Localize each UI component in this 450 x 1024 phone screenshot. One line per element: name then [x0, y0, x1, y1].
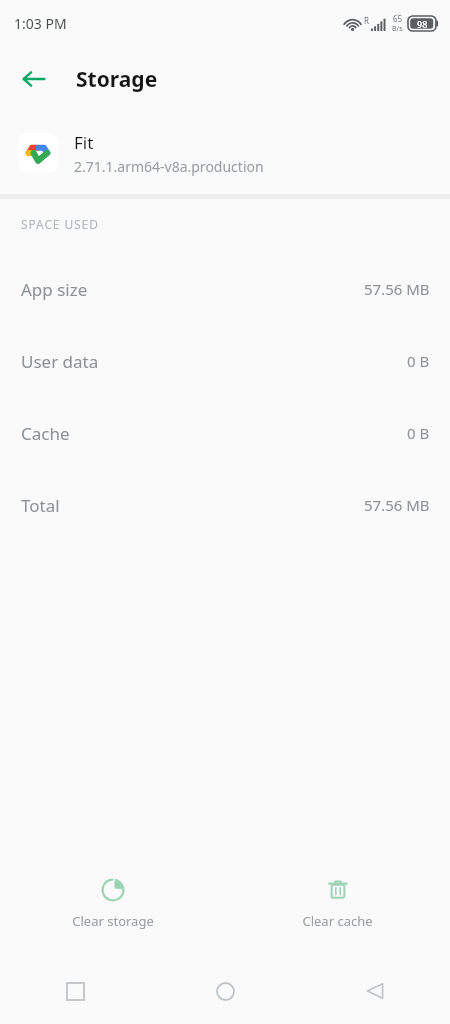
- button[interactable]: App size: [0, 253, 450, 325]
- button[interactable]: Recents: [0, 964, 150, 1018]
- staticText: 98: [417, 18, 428, 30]
- staticText: Fit: [74, 131, 94, 154]
- staticText: Clear cache: [302, 912, 373, 930]
- staticText: 0 B: [407, 423, 430, 443]
- staticText: App size: [21, 278, 88, 301]
- staticText: 57.56 MB: [364, 495, 430, 515]
- staticText: Clear storage: [72, 912, 154, 930]
- button[interactable]: Home: [150, 964, 300, 1018]
- staticText: 0 B: [407, 351, 430, 371]
- button[interactable]: Back: [10, 55, 58, 103]
- button[interactable]: Clear storage: [0, 866, 225, 940]
- button[interactable]: Total: [0, 469, 450, 541]
- button[interactable]: Fit: [0, 112, 450, 194]
- staticText: 1:03 PM: [14, 14, 67, 33]
- staticText: 65: [393, 13, 403, 24]
- staticText: Total: [21, 494, 60, 517]
- staticText: 2.71.1.arm64-v8a.production: [74, 157, 264, 176]
- staticText: Storage: [76, 65, 158, 94]
- button[interactable]: Back: [300, 964, 450, 1018]
- staticText: R: [364, 15, 369, 26]
- staticText: B/s: [392, 24, 403, 34]
- staticText: SPACE USED: [21, 216, 99, 232]
- staticText: User data: [21, 350, 99, 373]
- button[interactable]: Clear cache: [225, 866, 450, 940]
- button[interactable]: Cache: [0, 397, 450, 469]
- button[interactable]: User data: [0, 325, 450, 397]
- staticText: 57.56 MB: [364, 279, 430, 299]
- staticText: Cache: [21, 422, 70, 445]
